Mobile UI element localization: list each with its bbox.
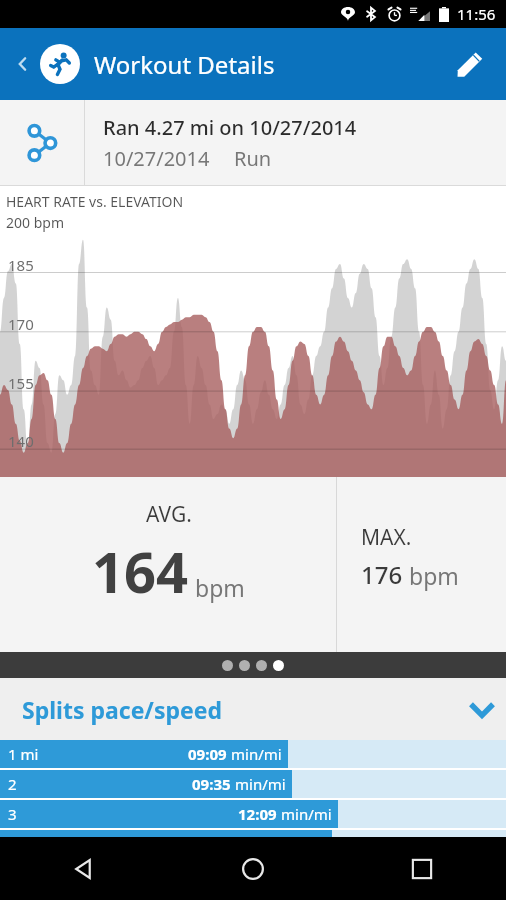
button[interactable]: Home — [168, 837, 337, 900]
staticText: Workout Details — [94, 48, 275, 81]
staticText: bpm — [195, 572, 245, 603]
staticText: 185 — [8, 255, 34, 275]
staticText: bpm — [409, 560, 459, 591]
staticText: 3 — [8, 804, 17, 824]
button[interactable]: Recents — [337, 837, 506, 900]
button[interactable]: Back — [8, 49, 38, 79]
staticText: 10/27/2014 — [103, 145, 210, 172]
staticText: 176 — [361, 558, 403, 591]
staticText: Run — [234, 145, 272, 172]
staticText: 2 — [8, 774, 17, 794]
other: Collapse — [458, 685, 506, 733]
button[interactable]: Ran 4.27 mi on 10/27/2014 — [0, 100, 506, 185]
staticText: min/mi — [281, 804, 332, 824]
button[interactable]: Splits pace/speed — [0, 678, 506, 740]
staticText: min/mi — [235, 774, 286, 794]
button[interactable]: Page 3 — [256, 660, 267, 671]
staticText: 200 bpm — [6, 213, 64, 232]
button[interactable]: Page 2 — [239, 660, 250, 671]
button[interactable]: 2 — [0, 770, 506, 798]
staticText: min/mi — [231, 744, 282, 764]
staticText: 164 — [92, 533, 189, 609]
staticText: 140 — [8, 431, 34, 451]
staticText: AVG. — [146, 500, 192, 529]
staticText: Ran 4.27 mi on 10/27/2014 — [103, 114, 357, 141]
button[interactable]: Back — [0, 837, 168, 900]
button[interactable]: MAX. — [337, 477, 506, 652]
button[interactable]: 1 mi — [0, 740, 506, 768]
staticText: 11:56 — [457, 4, 496, 24]
staticText: MAX. — [361, 523, 412, 552]
button[interactable]: Page 1 — [222, 660, 233, 671]
button[interactable]: Page 4 — [273, 660, 284, 671]
staticText: 170 — [8, 314, 34, 334]
staticText: 09:35 — [192, 774, 231, 794]
staticText: 09:09 — [188, 744, 227, 764]
staticText: 155 — [8, 373, 34, 393]
staticText: 1 mi — [8, 744, 39, 764]
staticText: Splits pace/speed — [22, 694, 222, 725]
staticText: HEART RATE vs. ELEVATION — [6, 192, 184, 211]
button[interactable]: 3 — [0, 800, 506, 828]
staticText: 12:09 — [238, 804, 277, 824]
button[interactable]: Edit — [448, 42, 492, 86]
button[interactable]: AVG. — [0, 477, 336, 652]
